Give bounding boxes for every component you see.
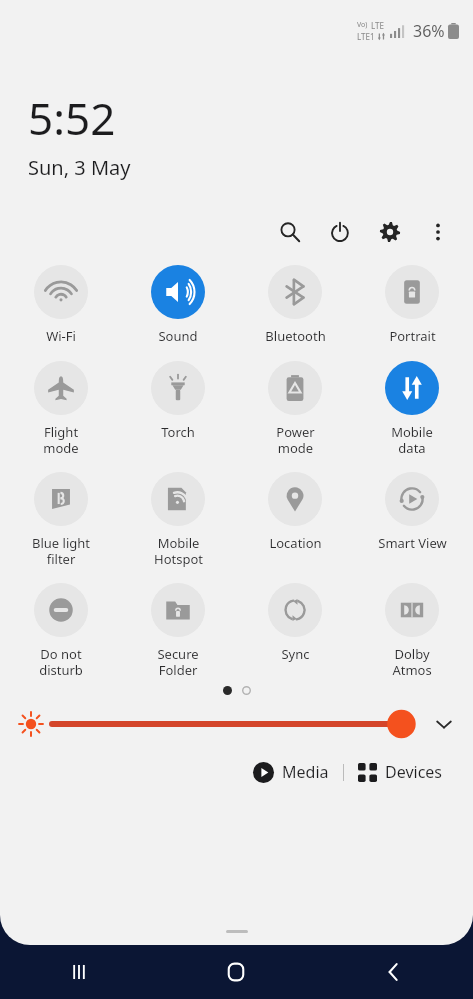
button[interactable]: Blue light filter	[10, 470, 112, 569]
button[interactable]: Recent apps	[0, 945, 157, 999]
staticText: Mobile Hotspot	[154, 534, 203, 567]
button[interactable]: Power off	[323, 215, 357, 249]
button[interactable]: Dolby Atmos	[361, 581, 463, 680]
staticText: Blue light filter	[32, 534, 90, 567]
button[interactable]: Smart View	[361, 470, 463, 554]
staticText: Devices	[385, 761, 443, 783]
staticText: LTE1	[357, 31, 375, 42]
button[interactable]: Do not disturb	[10, 581, 112, 680]
button[interactable]: Settings	[373, 215, 407, 249]
button[interactable]: Flight mode	[10, 359, 112, 458]
button[interactable]: Sync	[244, 581, 346, 665]
button[interactable]: Portrait	[361, 263, 463, 347]
staticText: Power mode	[276, 423, 315, 456]
button[interactable]: Home	[157, 945, 315, 999]
button[interactable]: Secure Folder	[127, 581, 229, 680]
staticText: LTE	[371, 20, 384, 31]
staticText: Sync	[281, 645, 310, 663]
button[interactable]: Devices	[352, 755, 449, 789]
button[interactable]: Expand brightness settings	[429, 709, 459, 739]
staticText: Sound	[158, 327, 198, 345]
button[interactable]: Bluetooth	[244, 263, 346, 347]
button[interactable]: Mobile Hotspot	[127, 470, 229, 569]
staticText: Torch	[161, 423, 195, 441]
button[interactable]: Torch	[127, 359, 229, 443]
button[interactable]: Sound	[127, 263, 229, 347]
staticText: Vo)	[357, 20, 368, 30]
button[interactable]: Location	[244, 470, 346, 554]
staticText: Location	[269, 534, 322, 552]
staticText: 36%	[413, 20, 445, 42]
staticText: Media	[282, 761, 329, 783]
staticText: Flight mode	[43, 423, 79, 456]
staticText: Portrait	[389, 327, 436, 345]
staticText: Wi-Fi	[46, 327, 76, 345]
button[interactable]: Search	[273, 215, 307, 249]
staticText: Secure Folder	[157, 645, 199, 678]
staticText: Dolby Atmos	[392, 645, 432, 678]
staticText: Smart View	[378, 534, 447, 552]
button[interactable]: More options	[421, 215, 455, 249]
button[interactable]: Back	[315, 945, 473, 999]
button[interactable]	[52, 707, 415, 741]
staticText: Bluetooth	[265, 327, 326, 345]
button[interactable]: Power mode	[244, 359, 346, 458]
button[interactable]: Media	[247, 755, 335, 789]
staticText: Mobile data	[391, 423, 433, 456]
staticText: Do not disturb	[39, 645, 83, 678]
button[interactable]: Wi-Fi	[10, 263, 112, 347]
staticText: 5:52	[28, 88, 116, 148]
button[interactable]: Mobile data	[361, 359, 463, 458]
staticText: Sun, 3 May	[28, 154, 131, 181]
